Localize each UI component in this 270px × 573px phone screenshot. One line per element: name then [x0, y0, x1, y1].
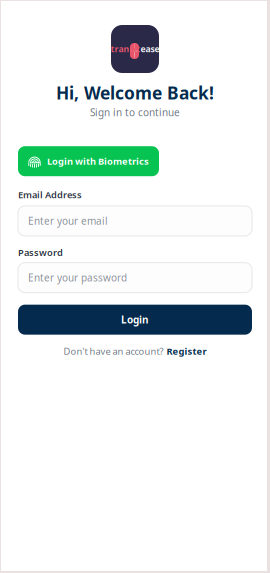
- button[interactable]: Login with Biometrics: [18, 146, 159, 176]
- staticText: Hi, Welcome Back!: [56, 81, 214, 105]
- staticText: Login with Biometrics: [47, 155, 149, 168]
- staticText: Email Address: [18, 188, 82, 201]
- staticText: ease: [140, 43, 159, 55]
- staticText: Don't have an account?: [63, 345, 163, 357]
- staticText: Login: [121, 313, 149, 326]
- staticText: transit: [110, 43, 140, 55]
- button[interactable]: Register: [166, 345, 206, 357]
- staticText: Enter your password: [28, 271, 127, 284]
- button[interactable]: Login: [18, 305, 252, 335]
- staticText: Password: [18, 246, 63, 259]
- staticText: Sign in to continue: [90, 106, 180, 119]
- staticText: Register: [166, 345, 206, 357]
- staticText: Enter your email: [28, 214, 108, 228]
